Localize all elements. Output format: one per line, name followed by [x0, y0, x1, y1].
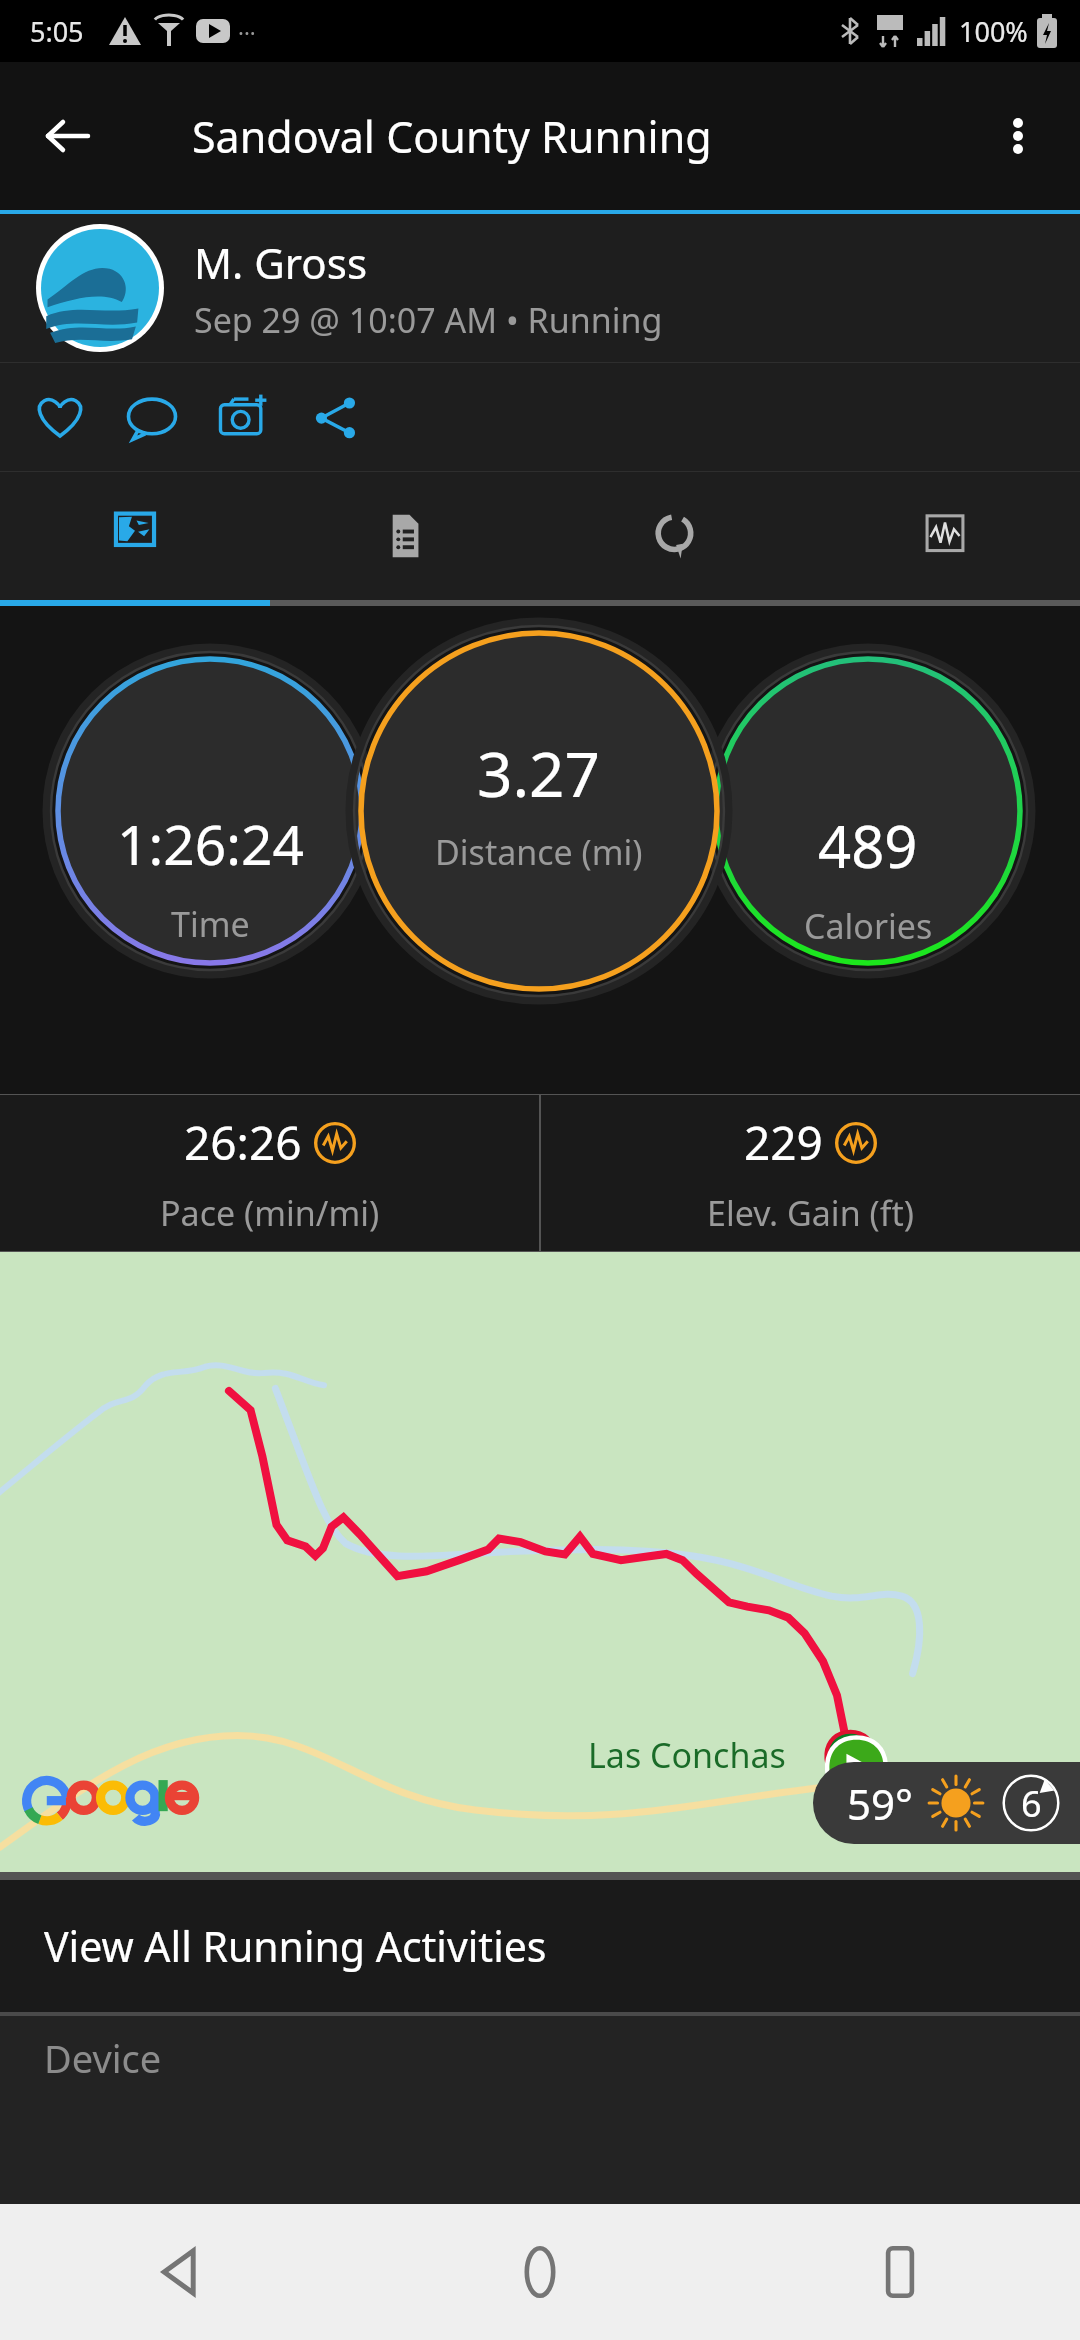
staticText: Elev. Gain (ft): [707, 1190, 914, 1236]
button[interactable]: Add photo: [198, 367, 290, 467]
button[interactable]: Share: [290, 367, 382, 467]
staticText: M. Gross: [194, 234, 367, 291]
staticText: 6: [1021, 1779, 1042, 1828]
staticText: 100%: [959, 13, 1028, 50]
staticText: Time: [171, 901, 250, 947]
staticText: 1:26:24: [117, 806, 304, 881]
staticText: Device: [44, 2032, 162, 2084]
button[interactable]: View All Running Activities: [0, 1880, 1080, 2012]
staticText: Pace (min/mi): [160, 1190, 380, 1236]
staticText: Distance (mi): [435, 829, 643, 875]
button[interactable]: Comment: [106, 367, 198, 467]
staticText: 5:05: [30, 13, 84, 50]
button[interactable]: 1:26:24: [60, 806, 360, 947]
staticText: 229: [744, 1111, 823, 1174]
button[interactable]: Back: [20, 88, 116, 184]
button[interactable]: Details tab: [270, 472, 540, 600]
button[interactable]: Graphs tab: [810, 472, 1080, 600]
staticText: View All Running Activities: [44, 1918, 547, 1974]
staticText: Sandoval County Running: [192, 107, 712, 166]
button[interactable]: 229: [541, 1095, 1080, 1251]
button[interactable]: Home: [360, 2204, 720, 2340]
button[interactable]: 3.27: [389, 731, 689, 875]
button[interactable]: 59°: [813, 1762, 1080, 1844]
staticText: 26:26: [184, 1111, 302, 1174]
button[interactable]: 26:26: [0, 1095, 539, 1251]
button[interactable]: Las Conchas: [0, 1252, 1080, 1872]
staticText: 3.27: [477, 731, 601, 815]
staticText: Calories: [804, 903, 933, 949]
button[interactable]: Map tab: [0, 472, 270, 600]
staticText: 489: [818, 806, 918, 885]
button[interactable]: M. Gross: [0, 214, 1080, 362]
staticText: Sep 29 @ 10:07 AM • Running: [194, 297, 663, 343]
button[interactable]: Recents: [720, 2204, 1080, 2340]
button[interactable]: 489: [718, 806, 1018, 949]
button[interactable]: Back: [0, 2204, 360, 2340]
staticText: Las Conchas: [588, 1732, 786, 1778]
button[interactable]: More options: [970, 88, 1066, 184]
button[interactable]: Laps tab: [540, 472, 810, 600]
staticText: 59°: [847, 1775, 914, 1832]
staticText: ...: [238, 11, 256, 41]
button[interactable]: Like: [14, 367, 106, 467]
